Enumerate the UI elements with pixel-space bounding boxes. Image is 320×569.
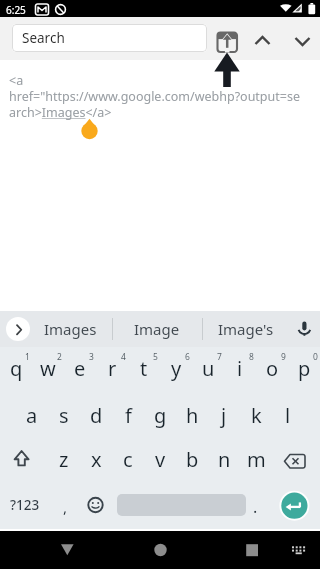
- staticText: i: [237, 355, 243, 382]
- button[interactable]: [227, 535, 257, 565]
- button[interactable]: p: [288, 345, 320, 391]
- button[interactable]: c: [112, 436, 144, 482]
- staticText: l: [285, 402, 291, 429]
- button[interactable]: t: [128, 345, 160, 391]
- staticText: 6:25: [6, 3, 26, 17]
- staticText: 3: [89, 351, 94, 363]
- button[interactable]: [80, 489, 111, 521]
- staticText: t: [140, 355, 148, 382]
- button[interactable]: h: [176, 392, 208, 438]
- staticText: h: [186, 402, 199, 429]
- staticText: Image's: [218, 319, 274, 339]
- staticText: 1: [25, 351, 30, 363]
- button[interactable]: u: [192, 345, 224, 391]
- button[interactable]: r: [96, 345, 128, 391]
- button[interactable]: Image: [112, 311, 202, 347]
- button[interactable]: v: [144, 436, 176, 482]
- button[interactable]: j: [208, 392, 240, 438]
- button[interactable]: i: [224, 345, 256, 391]
- button[interactable]: Image's: [202, 311, 290, 347]
- staticText: 5: [153, 351, 158, 363]
- button[interactable]: Images: [28, 311, 112, 347]
- button[interactable]: z: [48, 436, 80, 482]
- button[interactable]: w: [32, 345, 64, 391]
- button[interactable]: [278, 490, 311, 523]
- button[interactable]: [284, 535, 314, 565]
- button[interactable]: [6, 317, 30, 341]
- staticText: s: [59, 402, 69, 429]
- staticText: Image: [134, 319, 180, 339]
- button[interactable]: .: [195, 487, 315, 527]
- button[interactable]: [145, 535, 175, 565]
- staticText: b: [186, 446, 199, 473]
- staticText: p: [298, 355, 311, 382]
- staticText: 9: [281, 351, 286, 363]
- staticText: k: [251, 402, 262, 429]
- staticText: o: [266, 355, 279, 382]
- button[interactable]: k: [240, 392, 272, 438]
- staticText: v: [155, 446, 166, 473]
- staticText: ,: [63, 497, 68, 517]
- button[interactable]: y: [160, 345, 192, 391]
- staticText: Search: [22, 29, 65, 47]
- button[interactable]: l: [272, 392, 304, 438]
- button[interactable]: [213, 28, 241, 56]
- button[interactable]: n: [208, 436, 240, 482]
- staticText: e: [74, 355, 86, 382]
- button[interactable]: a: [16, 392, 48, 438]
- staticText: 2: [57, 351, 62, 363]
- button[interactable]: m: [240, 436, 272, 482]
- staticText: j: [221, 402, 227, 429]
- button[interactable]: o: [256, 345, 288, 391]
- staticText: d: [90, 402, 103, 429]
- staticText: .: [253, 496, 258, 518]
- staticText: ?123: [10, 496, 40, 514]
- staticText: n: [218, 446, 231, 473]
- button[interactable]: ?123: [0, 485, 85, 525]
- staticText: g: [154, 402, 167, 429]
- staticText: 6: [185, 351, 190, 363]
- staticText: w: [40, 355, 56, 382]
- button[interactable]: Search: [12, 24, 207, 52]
- button[interactable]: s: [48, 392, 80, 438]
- button[interactable]: ,: [5, 487, 125, 527]
- staticText: 8: [249, 351, 254, 363]
- staticText: <a href="https://www.google.com/webhp?ou…: [9, 72, 300, 121]
- button[interactable]: [292, 318, 314, 340]
- button[interactable]: [8, 444, 40, 476]
- button[interactable]: x: [80, 436, 112, 482]
- staticText: m: [247, 446, 266, 473]
- button[interactable]: f: [112, 392, 144, 438]
- staticText: f: [125, 402, 132, 429]
- staticText: 0: [313, 351, 318, 363]
- button[interactable]: b: [176, 436, 208, 482]
- staticText: r: [108, 355, 117, 382]
- button[interactable]: d: [80, 392, 112, 438]
- staticText: 7: [217, 351, 222, 363]
- button[interactable]: e: [64, 345, 96, 391]
- button[interactable]: q: [0, 345, 32, 391]
- staticText: x: [91, 446, 102, 473]
- staticText: q: [10, 355, 23, 382]
- staticText: 4: [121, 351, 126, 363]
- staticText: y: [171, 355, 182, 382]
- staticText: c: [123, 446, 133, 473]
- button[interactable]: [248, 26, 276, 52]
- button[interactable]: [288, 26, 316, 52]
- button[interactable]: g: [144, 392, 176, 438]
- staticText: a: [26, 402, 38, 429]
- button[interactable]: [279, 445, 311, 477]
- staticText: z: [59, 446, 69, 473]
- staticText: u: [202, 355, 215, 382]
- button[interactable]: [53, 535, 83, 565]
- staticText: Images: [44, 319, 97, 339]
